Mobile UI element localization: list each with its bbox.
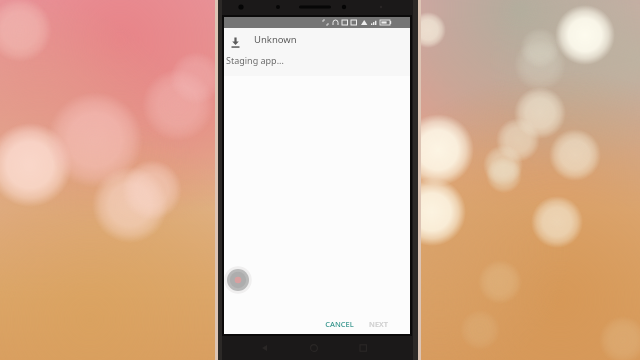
button[interactable]: NEXT bbox=[366, 316, 391, 332]
staticText: CANCEL bbox=[325, 319, 354, 329]
staticText: Unknown bbox=[254, 33, 297, 46]
button[interactable]: App icon bbox=[226, 268, 250, 292]
staticText: Staging app... bbox=[226, 54, 284, 66]
button[interactable]: Unknown bbox=[224, 28, 410, 51]
button[interactable]: CANCEL bbox=[322, 316, 357, 332]
staticText: NEXT bbox=[369, 319, 388, 329]
